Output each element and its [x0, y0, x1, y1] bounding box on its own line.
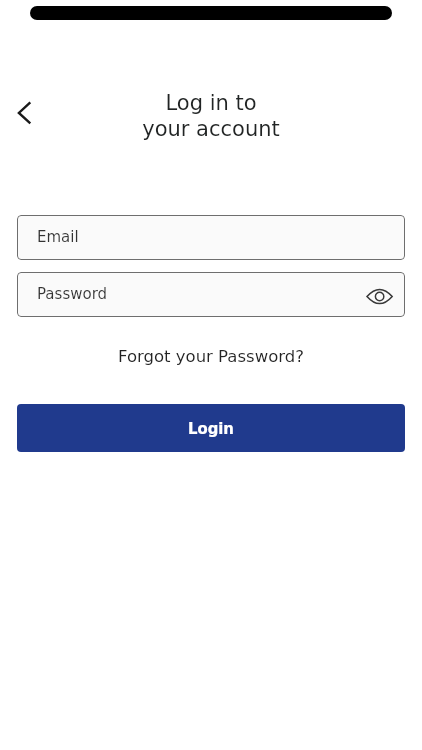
button[interactable]: Email [17, 215, 405, 260]
button[interactable] [10, 98, 42, 128]
staticText: Password [37, 285, 108, 302]
button[interactable] [364, 280, 397, 310]
button[interactable]: Forgot your Password? [118, 347, 304, 366]
staticText: Forgot your Password? [118, 347, 304, 366]
staticText: Log in to your account [142, 91, 280, 141]
staticText: Email [37, 228, 79, 245]
button[interactable]: Password [17, 272, 405, 317]
staticText: Login [188, 419, 234, 438]
button[interactable]: Login [17, 404, 405, 452]
